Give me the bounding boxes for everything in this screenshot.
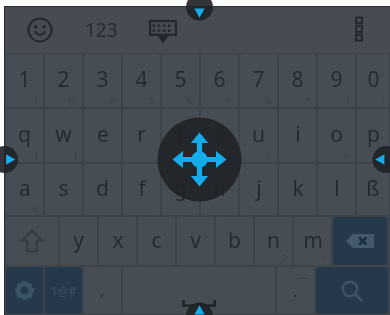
button[interactable]: 0 (357, 54, 389, 107)
button[interactable]: t (162, 109, 199, 162)
staticText: , (100, 279, 105, 301)
staticText: g (174, 174, 187, 203)
staticText: n (267, 226, 280, 255)
button[interactable]: a (6, 164, 43, 215)
button[interactable]: More options (351, 15, 367, 45)
staticText: . (293, 280, 298, 302)
staticText: i (295, 120, 301, 149)
button[interactable]: i (279, 109, 316, 162)
staticText: v (190, 226, 201, 255)
button[interactable]: Hide keyboard (148, 15, 178, 45)
button[interactable]: j (240, 164, 277, 215)
staticText: 123 (85, 17, 118, 43)
button[interactable]: Settings (6, 267, 43, 314)
staticText: d (96, 174, 109, 203)
staticText: y (73, 226, 84, 255)
staticText: % (186, 94, 194, 106)
staticText: ? (283, 252, 287, 264)
staticText: r (137, 120, 146, 149)
staticText: z (215, 120, 225, 149)
staticText: s (58, 174, 69, 203)
button[interactable]: c (138, 217, 175, 265)
button[interactable]: 1 (6, 54, 43, 107)
staticText: 6 (213, 65, 226, 94)
button[interactable]: r (123, 109, 160, 162)
staticText: 8 (291, 65, 304, 94)
button[interactable]: b (216, 217, 253, 265)
staticText: ü (266, 149, 272, 161)
button[interactable]: 8 (279, 54, 316, 107)
button[interactable]: 6 (201, 54, 238, 107)
staticText: w (55, 120, 72, 149)
staticText: ö (344, 149, 350, 161)
button[interactable]: l (318, 164, 355, 215)
staticText: & (265, 94, 272, 106)
staticText: l (334, 174, 340, 203)
button[interactable]: e (84, 109, 121, 162)
other: Settings (15, 281, 34, 300)
button[interactable]: v (177, 217, 214, 265)
button[interactable]: u (240, 109, 277, 162)
button[interactable]: Emoji (27, 17, 53, 43)
button[interactable]: 4 (123, 54, 160, 107)
staticText: [ (35, 149, 38, 161)
staticText: h (213, 174, 226, 203)
staticText: x (112, 226, 124, 255)
staticText: ) (381, 94, 384, 106)
staticText: 2 (57, 65, 70, 94)
button[interactable]: 5 (162, 54, 199, 107)
staticText: ß (366, 174, 380, 203)
button[interactable]: m (294, 217, 331, 265)
button[interactable] (333, 217, 387, 265)
staticText: 5 (174, 65, 187, 94)
button[interactable]: 3 (84, 54, 121, 107)
button[interactable]: 2 (45, 54, 82, 107)
button[interactable]: h (201, 164, 238, 215)
staticText: k (292, 174, 304, 203)
button[interactable]: 9 (318, 54, 355, 107)
button[interactable]: ß (357, 164, 389, 215)
staticText: 7 (252, 65, 265, 94)
button[interactable]: 7 (240, 54, 277, 107)
staticText: 1@# (51, 283, 77, 299)
button[interactable] (6, 217, 58, 265)
staticText: a (19, 174, 31, 203)
staticText: p (367, 120, 380, 149)
staticText: ä (32, 202, 38, 214)
button[interactable]: p (357, 109, 389, 162)
button[interactable]: y (60, 217, 97, 265)
button[interactable]: f (123, 164, 160, 215)
button[interactable]: k (279, 164, 316, 215)
button[interactable]: n (255, 217, 292, 265)
staticText: 0 (367, 65, 380, 94)
staticText: b (228, 226, 241, 255)
button[interactable]: s (45, 164, 82, 215)
button[interactable] (123, 267, 275, 314)
button[interactable]: d (84, 164, 121, 215)
button[interactable]: 1@# (45, 267, 82, 314)
staticText: m (303, 226, 323, 255)
button[interactable]: Search (316, 267, 388, 314)
button[interactable]: q (6, 109, 43, 162)
staticText: 9 (330, 65, 343, 94)
staticText: f (138, 174, 146, 203)
button[interactable]: z (201, 109, 238, 162)
staticText: ... (300, 268, 309, 282)
button[interactable]: w (45, 109, 82, 162)
button[interactable]: x (99, 217, 136, 265)
button[interactable]: o (318, 109, 355, 162)
staticText: 3 (96, 65, 109, 94)
staticText: u (252, 120, 265, 149)
button[interactable]: 123 (85, 17, 118, 43)
button[interactable]: g (162, 164, 199, 215)
staticText: e (97, 120, 109, 149)
